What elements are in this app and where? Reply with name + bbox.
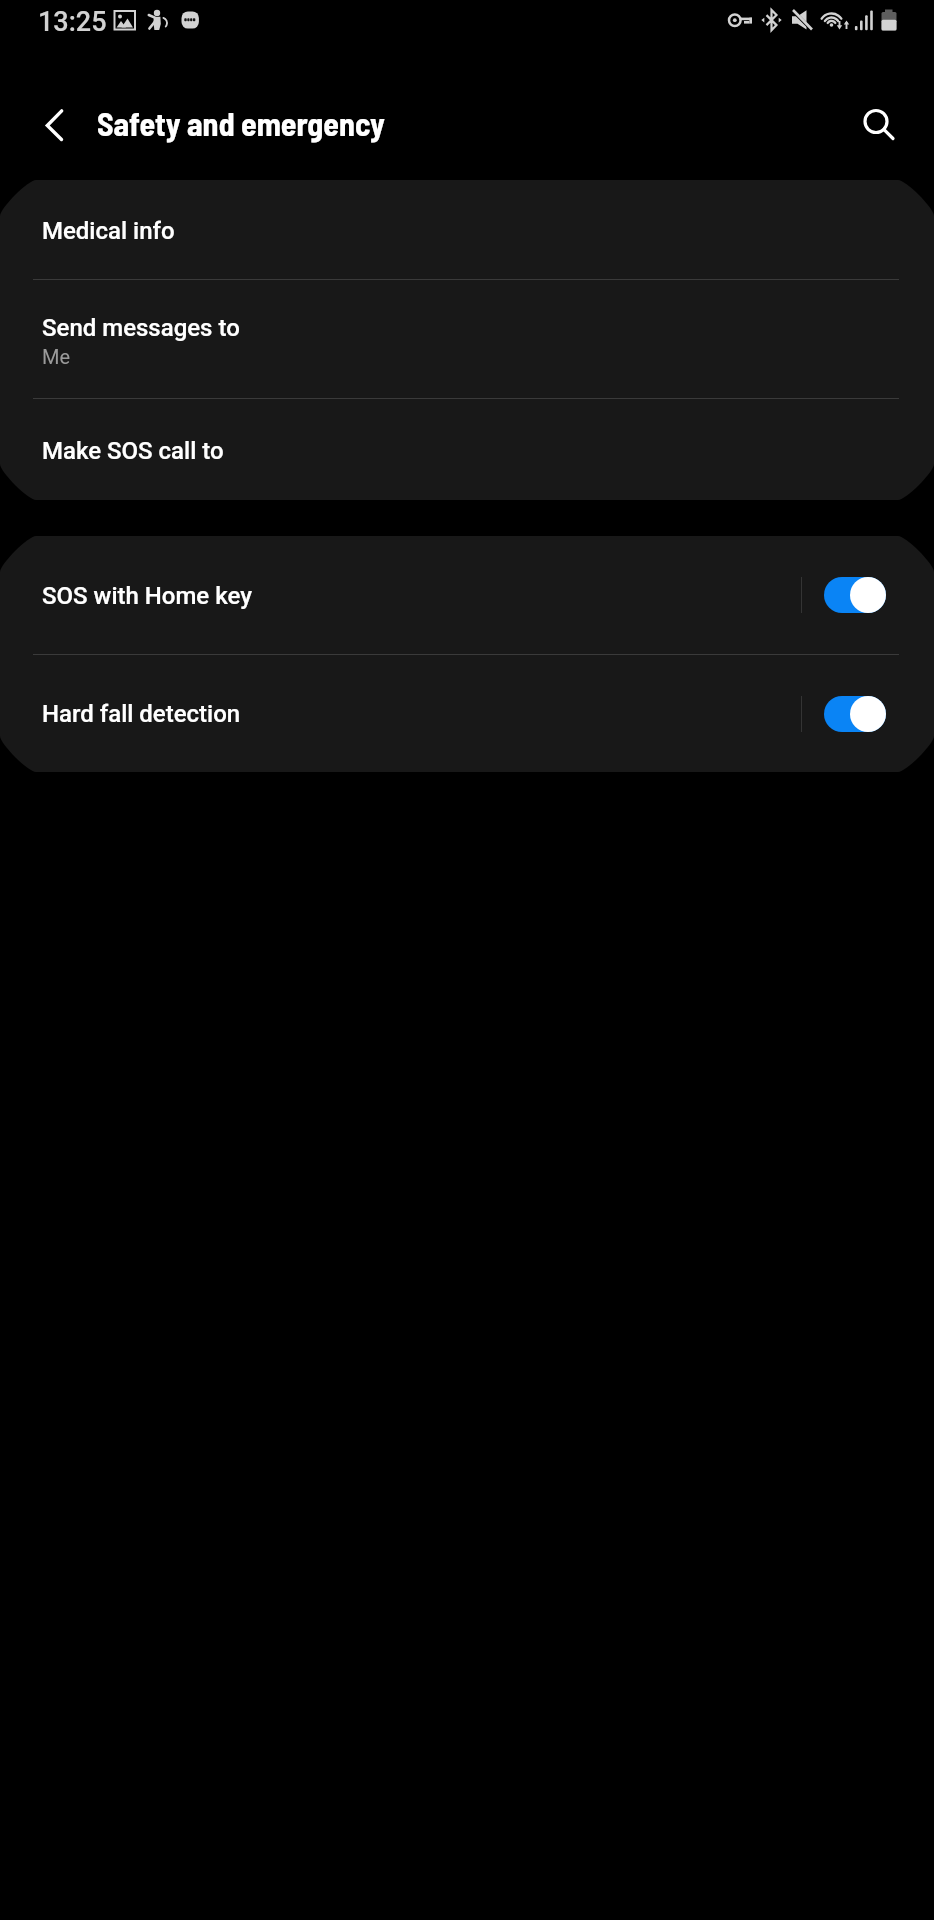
staticText: Medical info bbox=[42, 217, 175, 245]
button[interactable]: Make SOS call to bbox=[0, 399, 934, 500]
button[interactable]: SOS with Home key bbox=[0, 536, 934, 654]
button[interactable]: Hard fall detection bbox=[0, 655, 934, 772]
staticText: Make SOS call to bbox=[42, 437, 224, 465]
button[interactable]: Back bbox=[26, 89, 86, 149]
staticText: 13:25 bbox=[38, 6, 107, 38]
staticText: Me bbox=[42, 345, 71, 368]
staticText: Hard fall detection bbox=[42, 700, 801, 728]
button[interactable]: Toggle bbox=[824, 692, 887, 736]
staticText: Safety and emergency bbox=[97, 104, 385, 142]
button[interactable]: Medical info bbox=[0, 180, 934, 279]
staticText: SOS with Home key bbox=[42, 582, 801, 610]
button[interactable]: Search bbox=[848, 94, 904, 150]
button[interactable]: Toggle bbox=[824, 573, 887, 617]
button[interactable]: Send messages to bbox=[0, 280, 934, 398]
staticText: Send messages to bbox=[42, 314, 240, 342]
